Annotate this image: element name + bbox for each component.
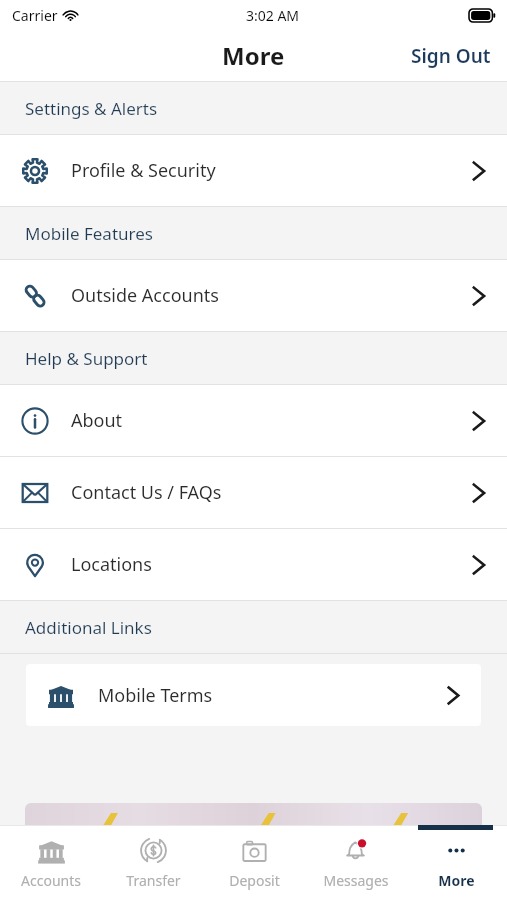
button[interactable]: Transfer [102,825,204,900]
staticText: More [438,871,475,890]
staticText: Mobile Features [25,222,153,245]
button[interactable]: More [406,825,507,900]
staticText: About [71,408,123,433]
staticText: Locations [71,552,152,577]
button[interactable]: Profile & Security [0,135,507,206]
button[interactable]: Outside Accounts [0,260,507,331]
staticText: Mobile Terms [98,683,213,708]
staticText: Sign Out [411,43,491,69]
button[interactable]: Locations [0,529,507,600]
staticText: 3:02 AM [246,6,300,25]
staticText: Transfer [126,871,181,890]
staticText: Messages [323,871,389,890]
button[interactable]: Sign Out [395,35,507,77]
staticText: Profile & Security [71,158,216,183]
staticText: Contact Us / FAQs [71,480,222,505]
staticText: Settings & Alerts [25,97,158,120]
staticText: More [222,39,285,72]
button[interactable]: About [0,385,507,456]
staticText: Carrier [12,6,58,25]
button[interactable]: Messages [305,825,406,900]
button[interactable]: Accounts [0,825,102,900]
button[interactable] [25,803,482,825]
button[interactable]: Deposit [204,825,305,900]
staticText: Additional Links [25,616,152,639]
staticText: Deposit [229,871,280,890]
button[interactable]: Mobile Terms [26,664,481,726]
staticText: Accounts [21,871,81,890]
staticText: Help & Support [25,347,148,370]
staticText: Outside Accounts [71,283,219,308]
button[interactable]: Contact Us / FAQs [0,457,507,528]
